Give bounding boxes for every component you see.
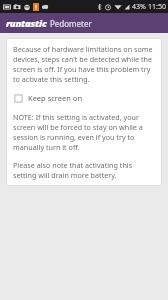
staticText: Keep screen on: [28, 93, 83, 103]
staticText: 43%: [132, 2, 146, 12]
button[interactable]: runtastic: [0, 17, 98, 30]
staticText: NOTE: If this setting is activated, your…: [13, 112, 155, 152]
button[interactable]: Keep screen on checkbox: [13, 92, 84, 104]
other: Keep screen on checkbox: [14, 94, 23, 103]
staticText: Because of hardware limitations on some …: [13, 44, 155, 84]
staticText: 11:50: [148, 2, 166, 12]
staticText: Pedometer: [50, 18, 92, 29]
staticText: Please also note that activating this se…: [13, 160, 155, 180]
staticText: runtastic: [6, 17, 47, 30]
